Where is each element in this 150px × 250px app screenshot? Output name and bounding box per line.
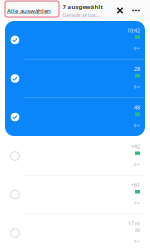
staticText: 10:42 — [127, 27, 140, 34]
button[interactable]: Close — [112, 2, 128, 18]
button[interactable]: 10:42 — [5, 21, 145, 59]
staticText: +61 — [131, 181, 140, 189]
button[interactable]: 17 m — [5, 214, 145, 250]
button[interactable]: 48 — [5, 98, 145, 136]
button[interactable]: +42 — [5, 137, 145, 175]
staticText: 17 m — [128, 220, 140, 227]
staticText: 7 ausgewählt — [62, 3, 102, 11]
button[interactable]: Alle auswählen — [7, 2, 53, 18]
button[interactable]: More options — [128, 2, 144, 18]
staticText: +42 — [131, 143, 140, 150]
button[interactable]: +61 — [5, 176, 145, 214]
staticText: 28 — [134, 65, 140, 73]
button[interactable]: 28 — [5, 59, 145, 97]
staticText: Alle auswählen — [7, 6, 51, 15]
staticText: Gerade aktua… — [62, 11, 99, 18]
staticText: 48 — [134, 104, 140, 111]
